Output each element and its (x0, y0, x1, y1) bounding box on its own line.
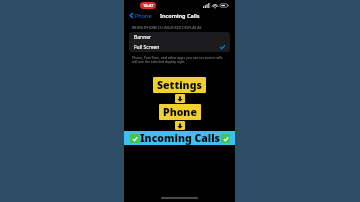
button[interactable]: Settings (153, 77, 206, 93)
staticText: Full Screen (134, 44, 160, 51)
button[interactable]: Banner (129, 32, 230, 42)
button[interactable]: Phone (159, 104, 201, 120)
staticText: Incoming Calls (160, 12, 200, 19)
staticText: 16:47 (143, 3, 154, 8)
staticText: Phone, FaceTime, and other apps you use … (132, 55, 223, 64)
other: Down arrow (175, 121, 185, 130)
staticText: Banner (134, 34, 152, 41)
staticText: Incoming Calls (140, 131, 220, 145)
other: Down arrow (175, 94, 185, 103)
staticText: Phone (163, 105, 197, 119)
button[interactable]: Phone (128, 11, 154, 20)
staticText: Phone (135, 12, 152, 19)
staticText: Settings (157, 78, 202, 92)
button[interactable]: Full Screen (129, 42, 230, 52)
staticText: WHEN IPHONE IS UNLOCKED DISPLAY AS (132, 25, 202, 30)
